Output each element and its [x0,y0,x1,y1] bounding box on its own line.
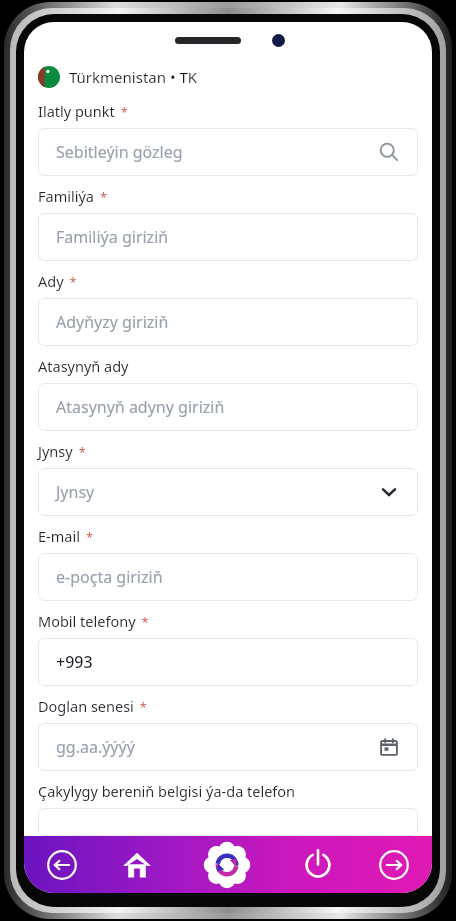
button[interactable]: Familiýa giriziň [38,213,418,261]
button[interactable]: Sebitleýin gözleg [38,128,418,176]
button[interactable]: Türkmenistan • TK [38,66,198,88]
staticText: +993 [56,651,400,673]
staticText: E-mail * [38,526,93,546]
staticText: Ilatly punkt * [38,101,128,121]
button[interactable]: Power [280,836,356,893]
staticText: Ady * [38,271,77,291]
button[interactable]: gg.aa.ýýýý [38,723,418,771]
staticText: Familiýa * [38,186,107,206]
staticText: Adyňyzy giriziň [56,311,400,333]
button[interactable]: Forward [356,836,432,893]
button[interactable]: Adyňyzy giriziň [38,298,418,346]
staticText: Familiýa giriziň [56,226,400,248]
button[interactable]: Atasynyň adyny giriziň [38,383,418,431]
staticText: Çakylygy bereniň belgisi ýa-da telefon [38,781,296,801]
staticText: Jynsy * [38,441,86,461]
button[interactable]: +993 [38,638,418,686]
staticText: Sebitleýin gözleg [56,141,378,163]
staticText: e-poçta giriziň [56,566,400,588]
button[interactable]: Refresh [174,836,280,893]
button[interactable]: Back [24,836,99,893]
staticText: Jynsy [56,481,378,503]
button[interactable]: Home [99,836,174,893]
staticText: Doglan senesi * [38,696,147,716]
button[interactable] [38,808,418,836]
staticText: Atasynyň adyny giriziň [56,396,400,418]
staticText: Türkmenistan • TK [69,67,198,87]
staticText: Atasynyň ady [38,356,129,376]
button[interactable]: e-poçta giriziň [38,553,418,601]
staticText: Mobil telefony * [38,611,149,631]
button[interactable]: Jynsy [38,468,418,516]
staticText: gg.aa.ýýýý [56,736,378,758]
